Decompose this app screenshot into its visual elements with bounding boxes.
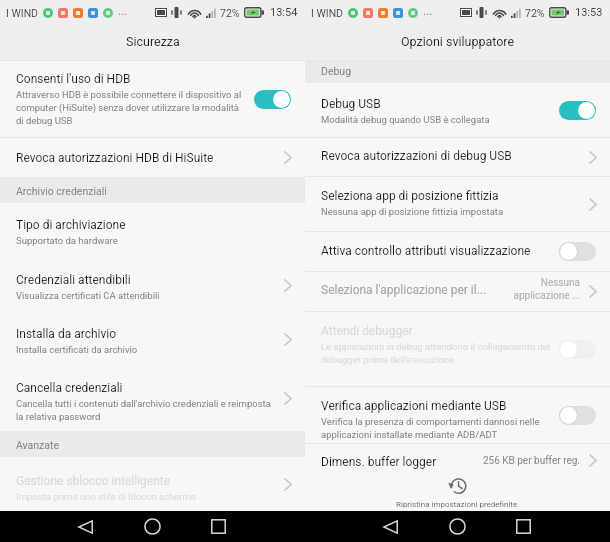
button[interactable]: Home <box>440 511 474 542</box>
staticText: I WIND <box>6 7 39 19</box>
staticText: Dimens. buffer logger <box>321 455 437 469</box>
staticText: 13:53 <box>575 6 603 19</box>
button[interactable]: Debug USB <box>305 83 610 137</box>
button[interactable]: Tipo di archiviazione <box>0 203 305 258</box>
staticText: Tipo di archiviazione <box>16 218 126 232</box>
button[interactable]: Gestione sblocco intelligente <box>0 457 305 511</box>
staticText: Debug <box>321 65 352 77</box>
staticText: Nessuna app di posizione fittizia impost… <box>321 206 504 217</box>
staticText: Installa da archivio <box>16 327 117 341</box>
staticText: Attraverso HDB è possibile connettere il… <box>16 89 244 127</box>
staticText: Seleziona l'applicazione per il... <box>321 283 487 297</box>
staticText: Installa certificati da archivio <box>16 344 138 355</box>
button[interactable]: Verifica applicazioni mediante USB <box>305 387 610 443</box>
button[interactable]: Back <box>373 511 407 542</box>
staticText: 256 KB per buffer reg. <box>470 455 580 467</box>
staticText: Imposta prima uno stile di blocco scherm… <box>16 491 197 502</box>
button[interactable]: Seleziona l'applicazione per il... <box>305 272 610 311</box>
staticText: Gestione sblocco intelligente <box>16 474 171 488</box>
button[interactable]: Cancella credenziali <box>0 366 305 431</box>
staticText: Opzioni sviluppatore <box>401 34 515 49</box>
staticText: Le applicazioni in debug attendono il co… <box>321 341 553 366</box>
button[interactable]: Home <box>135 511 169 542</box>
staticText: Supportato da hardware <box>16 235 118 246</box>
staticText: Cancella tutti i contenuti dall'archivio… <box>16 398 280 423</box>
staticText: 72% <box>220 7 240 19</box>
button[interactable]: Attiva controllo attributi visualizzazio… <box>305 232 610 271</box>
button[interactable]: Attendi debugger <box>305 312 610 386</box>
staticText: Nessuna applicazione ... <box>494 277 580 301</box>
staticText: Verifica applicazioni mediante USB <box>321 399 507 413</box>
button[interactable]: Dimens. buffer logger <box>305 444 610 477</box>
staticText: Modalità debug quando USB è collegata <box>321 114 490 125</box>
button[interactable]: Credenziali attendibili <box>0 258 305 312</box>
staticText: Avanzate <box>16 439 60 451</box>
button[interactable]: Revoca autorizzazioni HDB di HiSuite <box>0 138 305 177</box>
button[interactable]: Ripristina impostazioni predefinite <box>396 477 518 509</box>
button[interactable]: Back <box>68 511 102 542</box>
staticText: Attiva controllo attributi visualizzazio… <box>321 244 531 258</box>
button[interactable]: Recent apps <box>201 511 235 542</box>
staticText: ... <box>423 4 433 18</box>
staticText: Sicurezza <box>126 34 180 49</box>
staticText: 72% <box>525 7 545 19</box>
staticText: Revoca autorizzazioni HDB di HiSuite <box>16 151 214 165</box>
staticText: Revoca autorizzazioni di debug USB <box>321 149 512 163</box>
staticText: Cancella credenziali <box>16 381 123 395</box>
staticText: Ripristina impostazioni predefinite <box>396 500 518 509</box>
staticText: Archivio credenziali <box>16 185 107 197</box>
button[interactable]: Revoca autorizzazioni di debug USB <box>305 138 610 176</box>
staticText: I WIND <box>311 7 344 19</box>
staticText: Consenti l'uso di HDB <box>16 72 131 86</box>
button[interactable]: Consenti l'uso di HDB <box>0 61 305 137</box>
staticText: Visualizza certificati CA attendibili <box>16 290 160 301</box>
staticText: 13:54 <box>270 6 298 19</box>
button[interactable]: Installa da archivio <box>0 312 305 366</box>
staticText: Credenziali attendibili <box>16 273 131 287</box>
staticText: Seleziona app di posizione fittizia <box>321 189 499 203</box>
staticText: Attendi debugger <box>321 324 413 338</box>
button[interactable]: Recent apps <box>506 511 540 542</box>
staticText: Verifica la presenza di comportamenti da… <box>321 416 553 441</box>
staticText: ... <box>118 4 128 18</box>
button[interactable]: Seleziona app di posizione fittizia <box>305 177 610 231</box>
staticText: Debug USB <box>321 97 381 111</box>
